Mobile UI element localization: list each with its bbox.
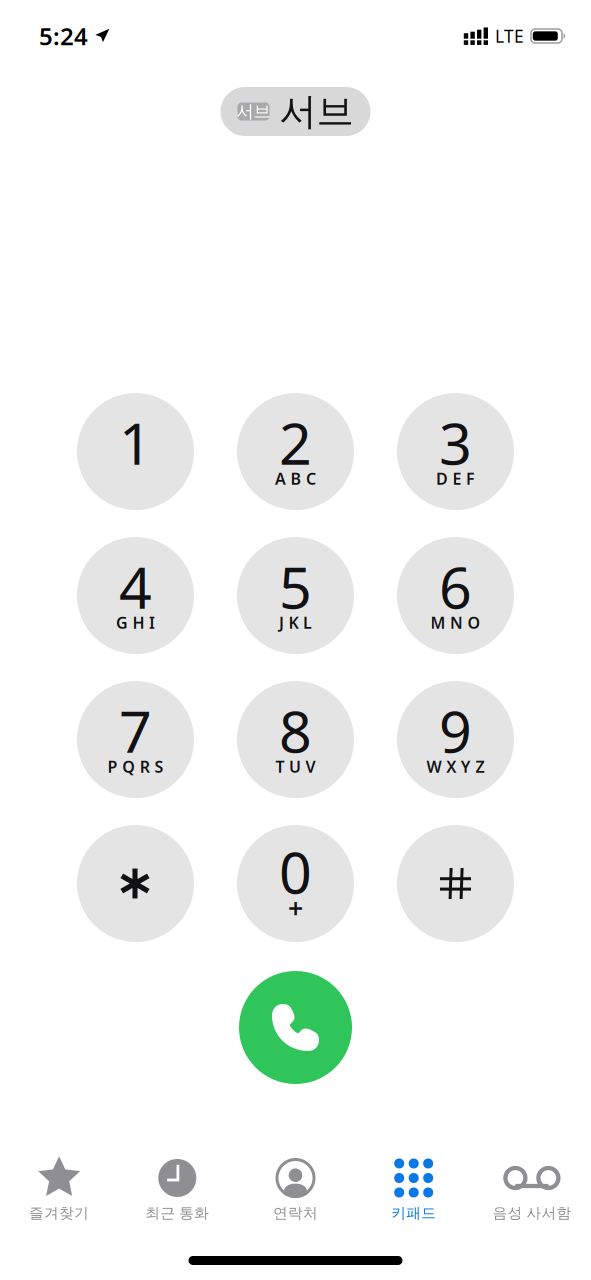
staticText: JKL [279,612,312,633]
staticText: 8 [279,692,312,768]
staticText: 6 [439,548,472,624]
button[interactable]: 1 [77,393,194,510]
button[interactable]: 연락처 [236,1156,355,1224]
staticText: 5 [279,548,312,624]
staticText: 5:24 [39,20,88,52]
staticText: 4 [119,548,152,624]
button[interactable]: 5 [237,537,354,654]
button[interactable]: 서브 [220,87,370,136]
button[interactable]: 6 [397,537,514,654]
button[interactable]: 7 [77,681,194,798]
staticText: 연락처 [273,1204,318,1222]
button[interactable]: Call [239,971,352,1084]
staticText: 서브 [279,89,353,134]
staticText: 7 [119,692,152,768]
staticText: WXYZ [427,756,484,777]
staticText: 0 [279,833,312,909]
staticText: MNO [430,612,481,633]
staticText: + [288,890,303,926]
staticText: PQRS [108,756,163,777]
button[interactable]: pound [397,825,514,942]
staticText: 서브 [236,101,270,122]
staticText: GHI [116,612,155,633]
button[interactable]: star [77,825,194,942]
staticText: ABC [275,468,316,489]
button[interactable]: 9 [397,681,514,798]
staticText: TUV [275,756,316,777]
staticText: 1 [119,404,152,480]
staticText: DEF [436,468,475,489]
staticText: LTE [495,24,524,47]
button[interactable]: 키패드 [355,1156,473,1224]
button[interactable]: 8 [237,681,354,798]
staticText: 키패드 [391,1204,436,1222]
button[interactable]: 4 [77,537,194,654]
staticText: 즐겨찾기 [29,1204,89,1222]
button[interactable]: 음성 사서함 [473,1156,591,1224]
staticText: 2 [279,404,312,480]
staticText: 최근 통화 [145,1204,209,1222]
staticText: 9 [439,692,472,768]
button[interactable]: 2 [237,393,354,510]
button[interactable]: 최근 통화 [118,1156,236,1224]
button[interactable]: 3 [397,393,514,510]
staticText: 3 [439,404,472,480]
staticText: 음성 사서함 [492,1204,571,1222]
button[interactable]: 0 [237,825,354,942]
button[interactable]: 즐겨찾기 [0,1156,118,1224]
